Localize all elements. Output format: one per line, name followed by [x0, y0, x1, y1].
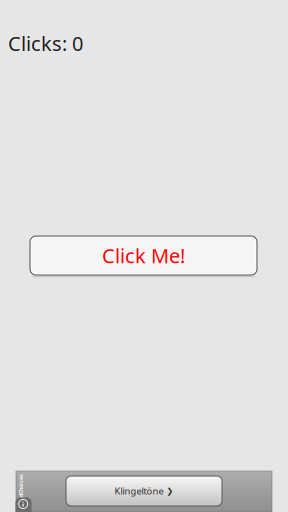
button[interactable]: Ad information [15, 497, 31, 512]
staticText: Click Me! [102, 242, 185, 269]
staticText: Klingeltöne [114, 485, 163, 497]
button[interactable]: Klingeltöne [66, 476, 222, 506]
button[interactable]: Click Me! [30, 236, 257, 275]
staticText: ❯ [166, 486, 173, 496]
staticText: AdChoices [7, 484, 34, 491]
staticText: Clicks: 0 [8, 30, 83, 57]
